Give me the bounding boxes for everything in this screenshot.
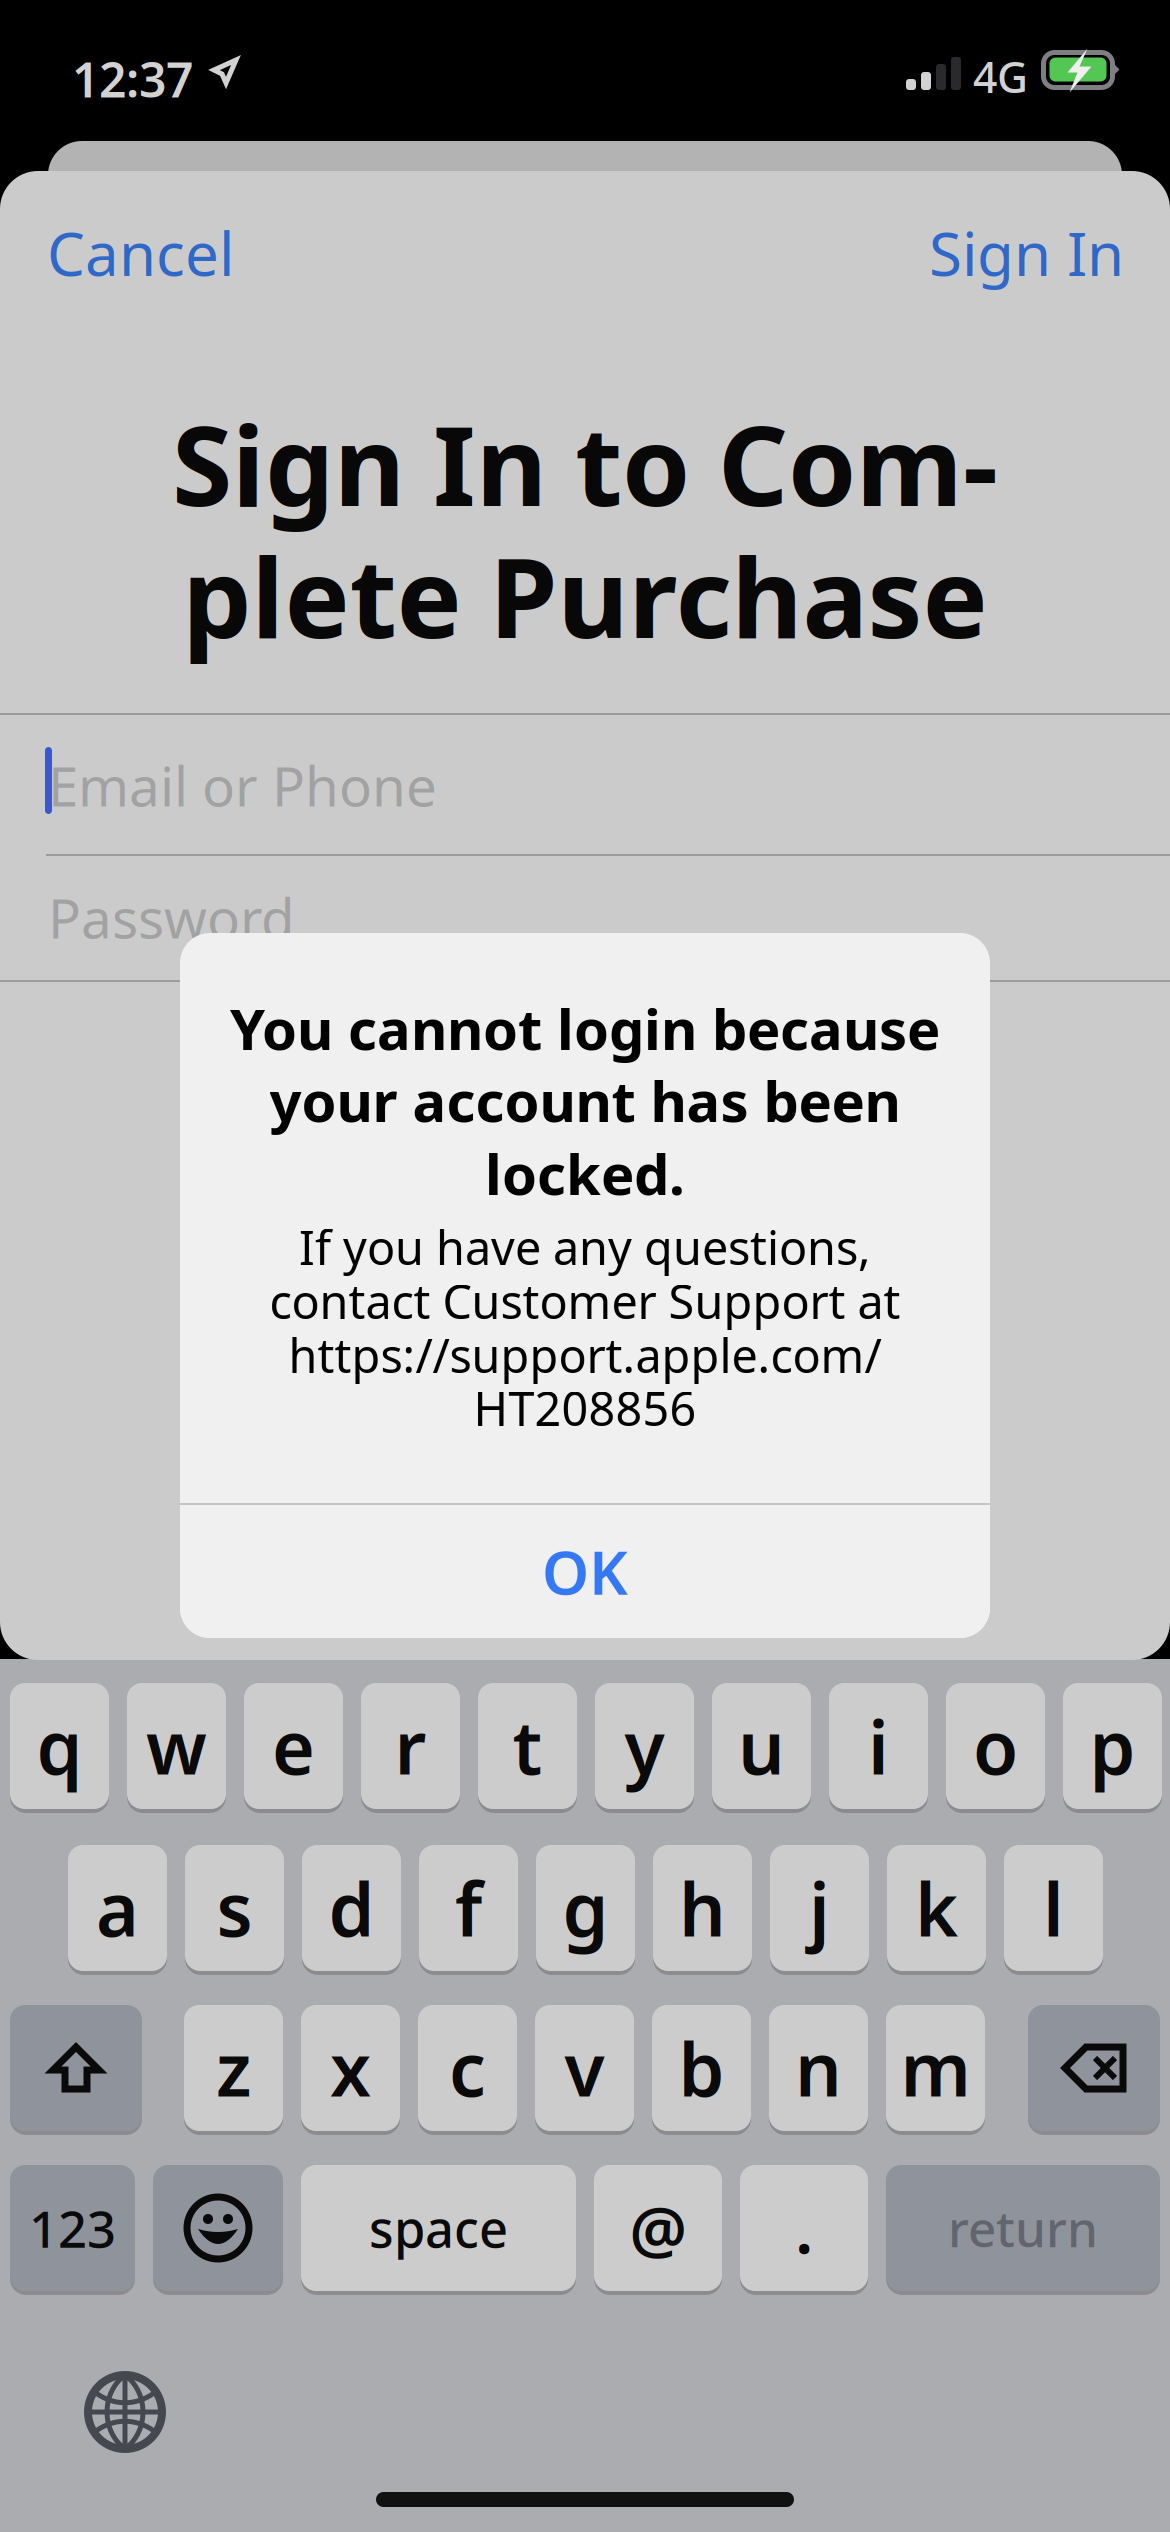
button[interactable]: Shift <box>10 2003 142 2133</box>
button[interactable]: Cancel <box>33 187 248 319</box>
staticText: l <box>1043 1859 1064 1957</box>
staticText: b <box>678 2019 724 2117</box>
button[interactable]: Sign In <box>915 187 1138 319</box>
button[interactable]: c <box>418 2003 517 2133</box>
button[interactable]: . <box>740 2163 868 2293</box>
staticText: v <box>564 2019 604 2117</box>
button[interactable]: k <box>887 1843 986 1973</box>
button[interactable]: g <box>536 1843 635 1973</box>
staticText: x <box>330 2019 371 2117</box>
button[interactable]: x <box>301 2003 400 2133</box>
staticText: 123 <box>29 2194 116 2262</box>
staticText: h <box>679 1859 726 1957</box>
staticText: Sign In to Com- <box>172 391 998 536</box>
button[interactable]: y <box>595 1681 694 1811</box>
staticText: g <box>562 1859 608 1957</box>
button[interactable]: z <box>184 2003 283 2133</box>
staticText: i <box>868 1697 889 1795</box>
staticText: m <box>900 2019 970 2117</box>
button[interactable]: n <box>769 2003 868 2133</box>
staticText: y <box>624 1697 664 1795</box>
button[interactable]: p <box>1063 1681 1162 1811</box>
button[interactable]: return <box>886 2163 1160 2293</box>
button[interactable]: r <box>361 1681 460 1811</box>
staticText: your account has been <box>269 1063 900 1137</box>
button[interactable]: a <box>68 1843 167 1973</box>
button[interactable]: e <box>244 1681 343 1811</box>
staticText: w <box>146 1697 207 1795</box>
staticText: t <box>512 1697 542 1795</box>
staticText: r <box>394 1697 426 1795</box>
button[interactable]: m <box>886 2003 985 2133</box>
staticText: e <box>272 1697 315 1795</box>
button[interactable]: OK <box>180 1505 990 1638</box>
staticText: f <box>455 1859 482 1957</box>
button[interactable]: w <box>127 1681 226 1811</box>
button[interactable]: t <box>478 1681 577 1811</box>
staticText: You cannot login because <box>230 991 940 1065</box>
button[interactable]: Switch keyboard <box>84 2371 166 2453</box>
button[interactable]: l <box>1004 1843 1103 1973</box>
staticText: Password <box>48 881 295 954</box>
staticText: k <box>915 1859 958 1957</box>
staticText: j <box>809 1859 830 1957</box>
button[interactable]: s <box>185 1843 284 1973</box>
staticText: z <box>216 2019 251 2117</box>
button[interactable]: 123 <box>10 2163 135 2293</box>
button[interactable]: @ <box>594 2163 722 2293</box>
staticText: 12:37 <box>72 47 193 111</box>
staticText: Email or Phone <box>48 749 437 822</box>
staticText: Sign In <box>929 213 1124 293</box>
staticText: s <box>216 1859 252 1957</box>
button[interactable]: o <box>946 1681 1045 1811</box>
staticText: OK <box>542 1532 628 1611</box>
button[interactable]: f <box>419 1843 518 1973</box>
staticText: a <box>96 1859 139 1957</box>
staticText: q <box>36 1697 82 1795</box>
staticText: u <box>738 1697 785 1795</box>
staticText: locked. <box>485 1136 685 1210</box>
staticText: @ <box>629 2185 686 2270</box>
staticText: c <box>449 2019 486 2117</box>
staticText: space <box>369 2194 508 2262</box>
staticText: o <box>973 1697 1018 1795</box>
staticText: contact Customer Support at <box>269 1270 900 1332</box>
staticText: 4G <box>973 48 1028 105</box>
button[interactable]: i <box>829 1681 928 1811</box>
button[interactable]: q <box>10 1681 109 1811</box>
button[interactable]: d <box>302 1843 401 1973</box>
button[interactable]: h <box>653 1843 752 1973</box>
button[interactable]: Emoji <box>153 2163 283 2293</box>
staticText: Cancel <box>47 213 234 293</box>
button[interactable]: j <box>770 1843 869 1973</box>
staticText: p <box>1089 1697 1135 1795</box>
staticText: return <box>948 2195 1098 2261</box>
staticText: If you have any questions, <box>299 1216 871 1278</box>
staticText: n <box>795 2019 842 2117</box>
staticText: https://support.apple.com/ <box>288 1324 881 1386</box>
staticText: plete Purchase <box>182 523 987 668</box>
button[interactable]: b <box>652 2003 751 2133</box>
button[interactable]: u <box>712 1681 811 1811</box>
staticText: HT208856 <box>473 1377 696 1439</box>
button[interactable]: space <box>301 2163 576 2293</box>
staticText: d <box>328 1859 374 1957</box>
button[interactable]: Delete <box>1028 2003 1160 2133</box>
staticText: . <box>795 2184 813 2272</box>
button[interactable]: v <box>535 2003 634 2133</box>
